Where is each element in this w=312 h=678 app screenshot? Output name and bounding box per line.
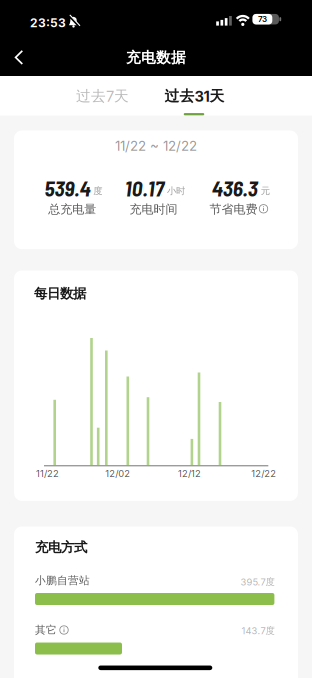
staticText: 总充电量 xyxy=(48,202,96,217)
staticText: 每日数据 xyxy=(34,285,86,302)
staticText: 11/22 xyxy=(36,468,59,479)
staticText: 73 xyxy=(258,14,267,24)
staticText: 12/12 xyxy=(178,468,201,479)
staticText: 节省电费 xyxy=(209,202,257,217)
staticText: 元 xyxy=(261,185,270,197)
staticText: 度 xyxy=(93,185,102,197)
staticText: 充电数据 xyxy=(126,48,186,66)
staticText: 23:53 xyxy=(30,16,66,30)
staticText: 12/22 xyxy=(251,468,276,479)
staticText: 395.7度 xyxy=(241,576,275,588)
staticText: 539.4 xyxy=(44,175,90,201)
staticText: 小时 xyxy=(167,185,185,197)
staticText: 11/22 ~ 12/22 xyxy=(115,138,197,154)
staticText: 过去31天 xyxy=(165,87,225,105)
staticText: 小鹏自营站 xyxy=(35,574,90,587)
staticText: 12/02 xyxy=(105,468,130,479)
staticText: 10.17 xyxy=(125,175,164,201)
staticText: 过去7天 xyxy=(76,87,129,105)
staticText: 其它 xyxy=(35,623,57,636)
staticText: 充电方式 xyxy=(35,539,87,555)
staticText: 充电时间 xyxy=(129,202,177,217)
staticText: 143.7度 xyxy=(242,625,275,636)
staticText: 436.3 xyxy=(212,175,258,201)
